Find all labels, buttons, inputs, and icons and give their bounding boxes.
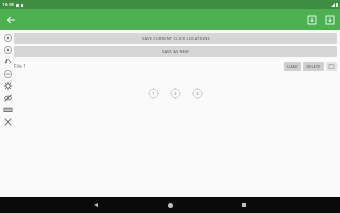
button[interactable]: SAVE CURRENT CLICK LOCATIONS xyxy=(14,33,337,44)
button[interactable]: Target 1 xyxy=(2,32,14,44)
staticText: 2 xyxy=(174,91,177,96)
button[interactable]: Click point 1 xyxy=(148,88,159,99)
button[interactable]: Back xyxy=(4,13,18,27)
button[interactable]: Import xyxy=(305,13,318,26)
button[interactable]: Panel xyxy=(2,104,14,116)
button[interactable]: Home xyxy=(164,199,176,211)
button[interactable]: Settings xyxy=(2,80,14,92)
button[interactable]: Back xyxy=(90,199,102,211)
button[interactable]: LOAD xyxy=(284,62,301,71)
button[interactable]: Recents xyxy=(238,199,250,211)
staticText: 10:18 xyxy=(2,2,14,8)
staticText: LOAD xyxy=(287,64,298,69)
staticText: 3 xyxy=(196,91,199,96)
button[interactable]: Click point 3 xyxy=(192,88,203,99)
button[interactable]: More options xyxy=(326,62,337,71)
button[interactable]: Pointer xyxy=(2,56,14,68)
staticText: SAVE AS NEW xyxy=(162,49,189,54)
staticText: DELETE xyxy=(306,64,321,69)
button[interactable]: Click point 2 xyxy=(170,88,181,99)
button[interactable]: Target 2 xyxy=(2,44,14,56)
button[interactable]: Export xyxy=(323,13,336,26)
button[interactable]: DELETE xyxy=(303,62,324,71)
staticText: SAVE CURRENT CLICK LOCATIONS xyxy=(142,36,210,41)
staticText: File 1 xyxy=(14,63,26,69)
button[interactable]: Close xyxy=(2,116,14,128)
staticText: 1 xyxy=(152,91,155,96)
button[interactable]: SAVE AS NEW xyxy=(14,46,337,57)
button[interactable]: Hide overlay xyxy=(2,92,14,104)
button[interactable]: Minus target xyxy=(2,68,14,80)
